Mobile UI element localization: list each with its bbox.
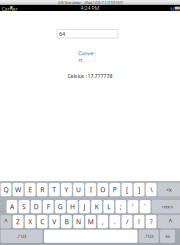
button[interactable]: ? <box>146 215 156 228</box>
button[interactable]: P <box>109 183 120 196</box>
staticText: P <box>113 185 117 194</box>
staticText: Celsius : 17.777778 <box>67 72 112 80</box>
button[interactable]: U <box>73 183 84 196</box>
staticText: J <box>83 202 85 211</box>
staticText: S <box>22 202 26 211</box>
staticText: Carrier <box>1 5 17 12</box>
button[interactable]: ! <box>134 215 144 228</box>
staticText: G <box>58 202 63 211</box>
staticText: ] <box>138 185 140 194</box>
button[interactable]: \ <box>146 183 156 196</box>
button[interactable]: N <box>73 215 84 228</box>
staticText: kb <box>165 234 169 239</box>
staticText: V <box>52 217 56 226</box>
button[interactable]: ' <box>128 200 138 213</box>
button[interactable]: X <box>25 215 35 228</box>
button[interactable]: ` <box>140 200 150 213</box>
staticText: F <box>47 202 50 211</box>
staticText: \ <box>150 185 152 194</box>
button[interactable]: C <box>37 215 48 228</box>
button[interactable]: K <box>91 200 102 213</box>
button[interactable]: H <box>67 200 78 213</box>
staticText: ; <box>120 202 122 211</box>
button[interactable]: J <box>79 200 90 213</box>
staticText: N <box>76 217 81 226</box>
staticText: ^ <box>168 217 172 226</box>
staticText: X <box>28 217 32 226</box>
staticText: .?123 <box>17 234 26 239</box>
staticText: iOS Simulator - iPad / iOS 7.1 (11D167) <box>57 0 122 5</box>
button[interactable] <box>44 230 137 243</box>
staticText: T <box>52 185 56 194</box>
button[interactable]: ; <box>115 200 126 213</box>
staticText: U <box>76 185 81 194</box>
button[interactable]: W <box>13 183 23 196</box>
staticText: <x <box>166 186 172 193</box>
staticText: L <box>107 202 110 211</box>
button[interactable]: .?123 <box>139 230 159 243</box>
button[interactable]: B <box>61 215 72 228</box>
button[interactable]: [ <box>122 183 132 196</box>
staticText: O <box>100 185 105 194</box>
staticText: M <box>88 217 94 226</box>
button[interactable]: E <box>25 183 35 196</box>
staticText: Z <box>16 217 20 226</box>
button[interactable]: S <box>19 200 29 213</box>
button[interactable]: Y <box>61 183 72 196</box>
staticText: / <box>126 217 128 226</box>
staticText: return <box>161 204 172 209</box>
staticText: D <box>34 202 39 211</box>
staticText: ^ <box>4 217 8 226</box>
button[interactable]: M <box>85 215 96 228</box>
button[interactable]: V <box>49 215 60 228</box>
button[interactable]: / <box>122 215 132 228</box>
button[interactable]: return <box>152 200 180 213</box>
staticText: R <box>40 185 44 194</box>
button[interactable]: Q <box>1 183 11 196</box>
staticText: 100% <box>169 6 180 13</box>
staticText: Q <box>3 185 8 194</box>
staticText: Convert <box>78 50 95 64</box>
staticText: , <box>102 217 104 226</box>
staticText: 4:24 PM <box>80 4 99 11</box>
button[interactable]: ] <box>134 183 144 196</box>
button[interactable]: R <box>37 183 48 196</box>
staticText: Y <box>64 185 68 194</box>
button[interactable]: T <box>49 183 60 196</box>
button[interactable]: Z <box>13 215 23 228</box>
button[interactable]: . <box>109 215 120 228</box>
staticText: A <box>10 202 14 211</box>
staticText: E <box>28 185 32 194</box>
staticText: I <box>90 185 92 194</box>
button[interactable]: kb <box>160 230 175 243</box>
button[interactable]: F <box>43 200 54 213</box>
button[interactable]: <x <box>158 183 180 196</box>
button[interactable]: I <box>85 183 96 196</box>
staticText: ` <box>144 202 146 211</box>
button[interactable]: L <box>103 200 114 213</box>
staticText: B <box>64 217 68 226</box>
button[interactable]: G <box>55 200 66 213</box>
staticText: W <box>15 185 21 194</box>
button[interactable]: ^ <box>1 215 11 228</box>
button[interactable]: O <box>97 183 108 196</box>
button[interactable]: .?123 <box>1 230 43 243</box>
staticText: C <box>40 217 44 226</box>
staticText: ' <box>132 202 134 211</box>
button[interactable]: D <box>31 200 41 213</box>
staticText: [ <box>126 185 128 194</box>
staticText: H <box>70 202 75 211</box>
button[interactable]: Convert <box>78 52 95 61</box>
staticText: ? <box>150 217 153 226</box>
button[interactable]: A <box>7 200 17 213</box>
staticText: 64 <box>59 30 65 37</box>
button[interactable]: ^ <box>158 215 180 228</box>
button[interactable]: , <box>97 215 108 228</box>
staticText: . <box>114 217 116 226</box>
staticText: K <box>95 202 99 211</box>
staticText: .?123 <box>144 234 153 239</box>
staticText: ! <box>138 217 140 226</box>
